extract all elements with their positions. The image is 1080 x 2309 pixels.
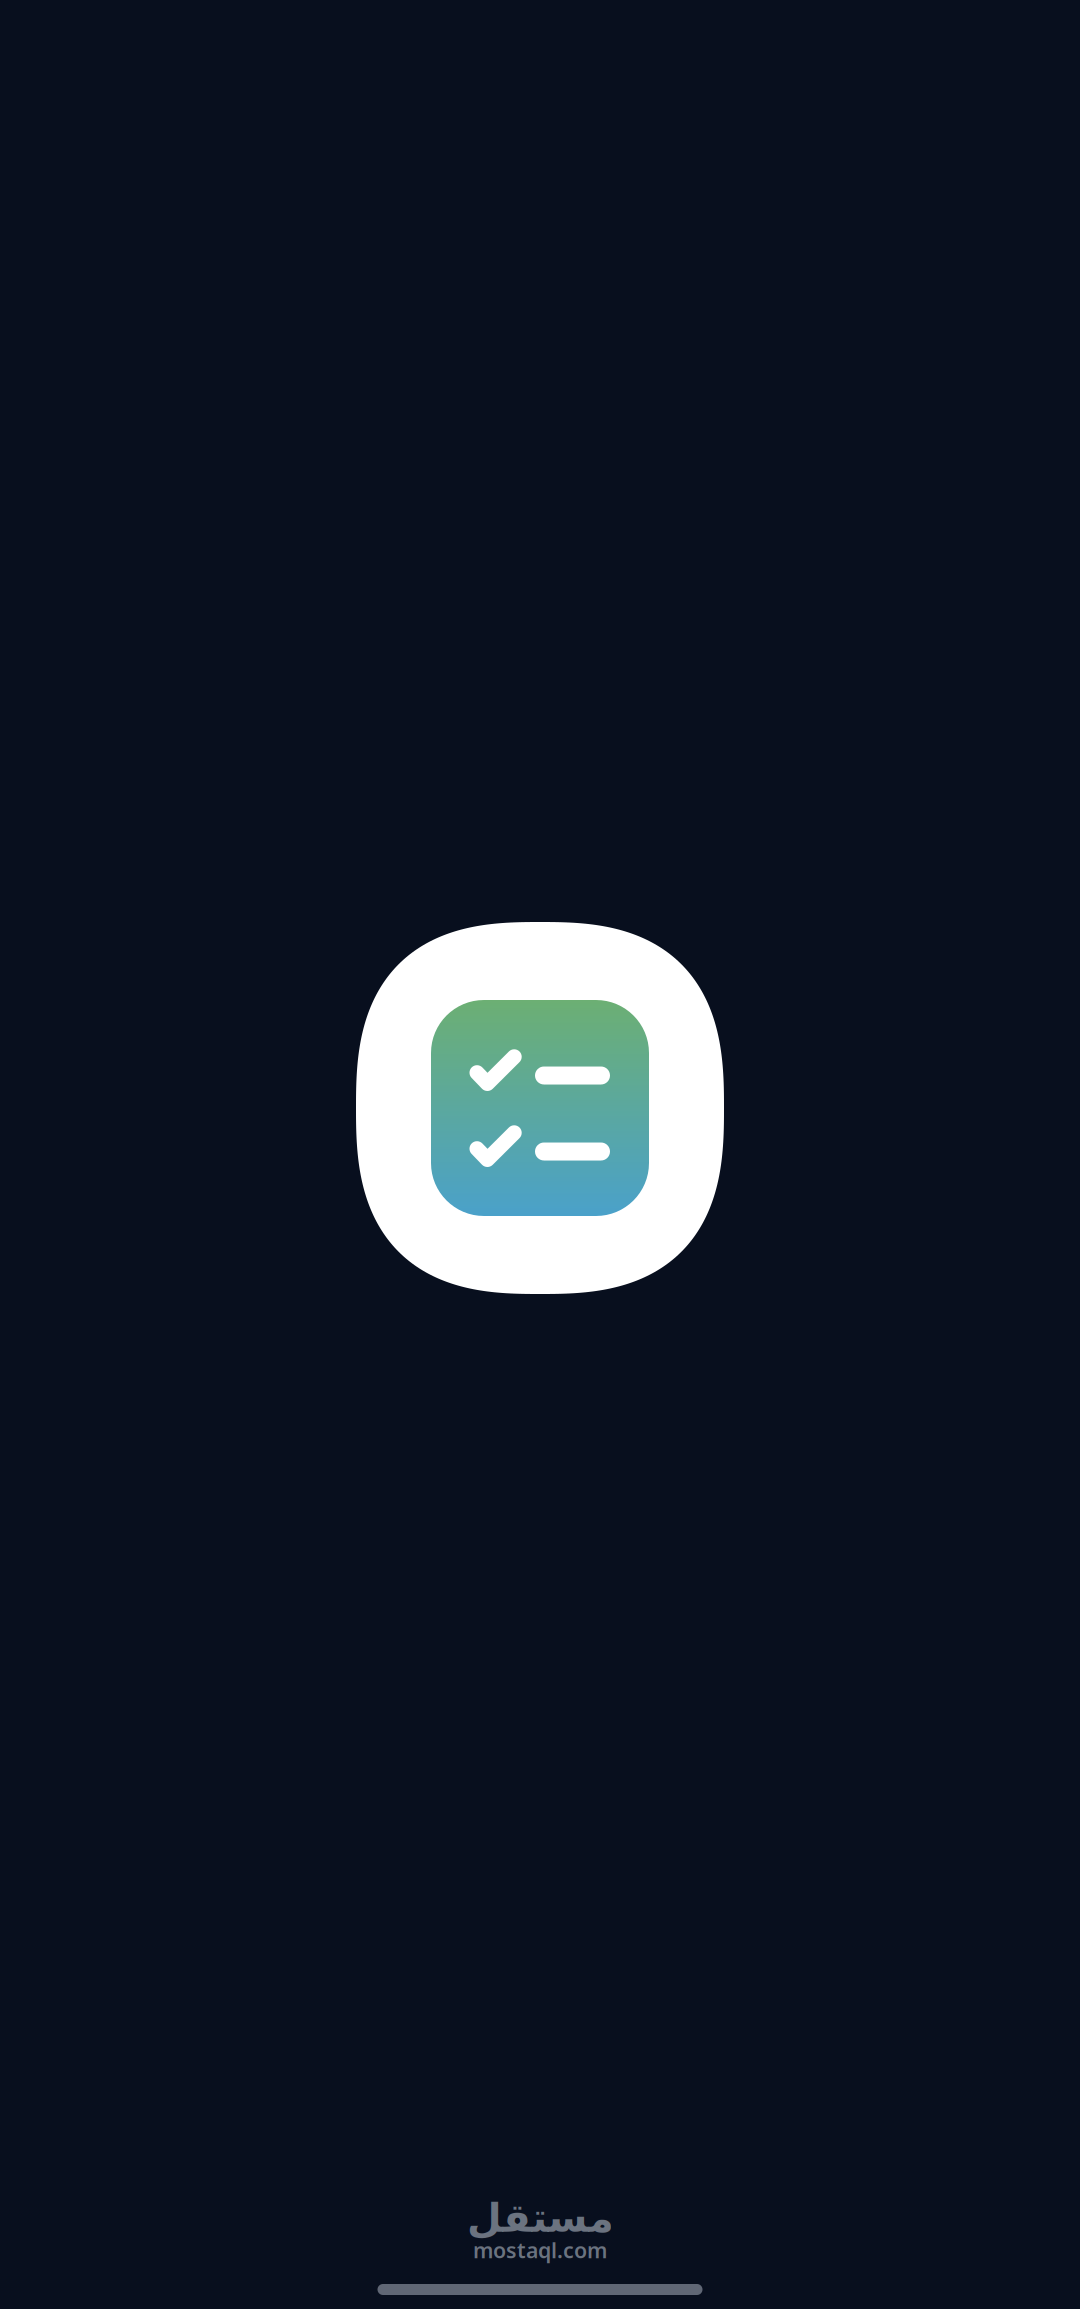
staticText: مستقل: [466, 2195, 613, 2241]
image: App icon — checklist: [356, 922, 724, 1294]
staticText: mostaql.com: [473, 2236, 607, 2264]
